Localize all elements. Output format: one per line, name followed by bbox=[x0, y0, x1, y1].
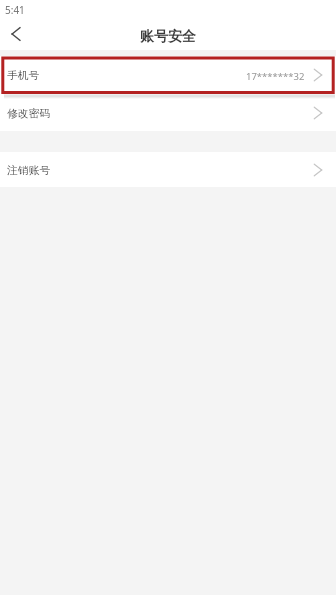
staticText: 注销账号 bbox=[7, 164, 51, 178]
button[interactable]: 手机号 bbox=[0, 56, 336, 94]
staticText: 修改密码 bbox=[7, 107, 51, 121]
staticText: 5:41 bbox=[5, 3, 25, 17]
staticText: 账号安全 bbox=[140, 28, 196, 46]
staticText: 17*******32 bbox=[246, 70, 305, 83]
button[interactable]: 修改密码 bbox=[0, 94, 336, 131]
button[interactable]: Back bbox=[4, 22, 28, 46]
button[interactable]: 注销账号 bbox=[0, 152, 336, 187]
staticText: 手机号 bbox=[7, 69, 40, 83]
